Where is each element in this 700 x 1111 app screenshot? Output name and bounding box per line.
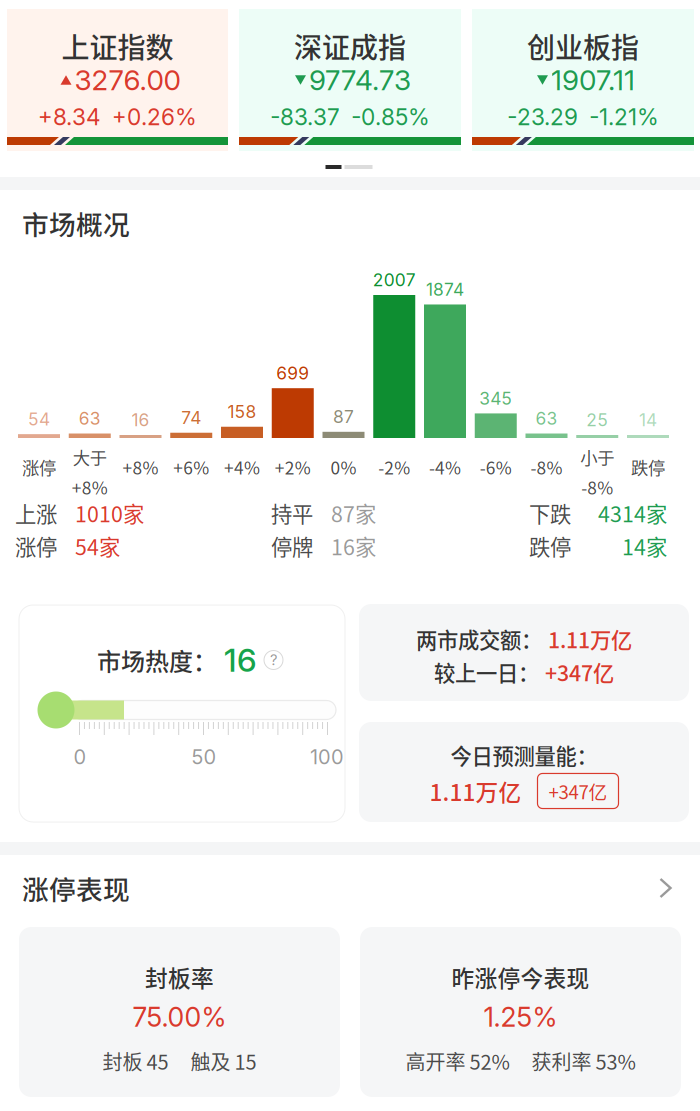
- staticText: 持平: [271, 498, 313, 528]
- staticText: +347亿: [548, 777, 607, 804]
- staticText: 跌停: [631, 454, 665, 480]
- staticText: 1010家: [75, 498, 144, 528]
- staticText: 9774.73: [309, 63, 411, 97]
- staticText: -8%: [530, 454, 562, 480]
- staticText: 75.00%: [132, 1001, 226, 1033]
- staticText: 1907.11: [551, 63, 635, 97]
- staticText: 74: [181, 407, 201, 428]
- staticText: 市场概况: [22, 204, 130, 242]
- staticText: 1.11万亿: [548, 624, 632, 654]
- staticText: 大于: [73, 444, 107, 469]
- staticText: 2007: [373, 269, 416, 290]
- staticText: 4314家: [598, 498, 667, 528]
- staticText: 25: [586, 409, 608, 430]
- staticText: 699: [276, 363, 309, 384]
- staticText: 小于: [580, 444, 614, 469]
- staticText: 63: [535, 408, 557, 429]
- staticText: 跌停: [529, 531, 571, 561]
- staticText: +2%: [275, 454, 311, 480]
- staticText: ?: [270, 651, 277, 669]
- staticText: 上证指数: [61, 26, 173, 66]
- staticText: -6%: [480, 454, 512, 480]
- staticText: -23.29: [507, 103, 578, 131]
- staticText: 54家: [75, 531, 120, 561]
- staticText: -1.21%: [589, 103, 659, 131]
- staticText: 市场热度：: [97, 643, 217, 677]
- staticText: 16: [131, 409, 149, 430]
- button[interactable]: 上证指数: [7, 9, 228, 151]
- staticText: 87: [333, 406, 354, 427]
- staticText: 下跌: [529, 498, 571, 528]
- staticText: +8%: [122, 454, 158, 480]
- staticText: +8%: [72, 474, 108, 500]
- staticText: 停牌: [271, 531, 313, 561]
- staticText: 0: [73, 745, 86, 769]
- staticText: 16: [224, 641, 257, 679]
- staticText: 涨停: [15, 531, 57, 561]
- button[interactable]: 封板率: [19, 927, 340, 1097]
- staticText: 50: [191, 745, 216, 769]
- staticText: +347亿: [545, 657, 614, 687]
- staticText: 16家: [331, 531, 376, 561]
- staticText: 高开率 52%: [405, 1046, 509, 1075]
- button[interactable]: 创业板指: [472, 9, 694, 151]
- staticText: +0.26%: [112, 103, 197, 131]
- staticText: 两市成交额：: [416, 624, 542, 654]
- staticText: +6%: [173, 454, 209, 480]
- staticText: 创业板指: [527, 26, 639, 66]
- staticText: -4%: [429, 454, 461, 480]
- staticText: 63: [79, 408, 101, 429]
- staticText: 87家: [331, 498, 376, 528]
- staticText: -0.85%: [351, 103, 430, 131]
- staticText: -2%: [378, 454, 410, 480]
- staticText: 涨停: [22, 454, 56, 480]
- staticText: -8%: [581, 474, 613, 500]
- staticText: +8.34: [38, 103, 101, 131]
- staticText: 封板 45: [102, 1046, 168, 1075]
- staticText: 1.11万亿: [429, 775, 521, 807]
- staticText: 14家: [622, 531, 667, 561]
- staticText: 涨停表现: [22, 869, 130, 907]
- staticText: 深证成指: [294, 26, 406, 66]
- staticText: 100: [310, 745, 344, 769]
- staticText: -83.37: [270, 103, 340, 131]
- staticText: 1.25%: [483, 1001, 557, 1033]
- staticText: 触及 15: [190, 1046, 256, 1075]
- staticText: 上涨: [15, 498, 57, 528]
- staticText: 3276.00: [74, 63, 180, 97]
- staticText: 54: [28, 409, 50, 430]
- staticText: 获利率 53%: [531, 1046, 635, 1075]
- staticText: 0%: [330, 454, 356, 480]
- staticText: 1874: [426, 279, 464, 300]
- button[interactable]: 昨涨停今表现: [360, 927, 681, 1097]
- staticText: 345: [479, 388, 512, 409]
- staticText: 158: [227, 401, 256, 422]
- staticText: 昨涨停今表现: [451, 961, 589, 993]
- staticText: +4%: [224, 454, 260, 480]
- staticText: 封板率: [145, 961, 214, 993]
- staticText: 14: [639, 409, 657, 430]
- button[interactable]: 涨停表现: [0, 857, 700, 919]
- staticText: 较上一日：: [434, 657, 539, 687]
- staticText: 今日预测量能：: [450, 740, 597, 770]
- button[interactable]: 深证成指: [239, 9, 461, 151]
